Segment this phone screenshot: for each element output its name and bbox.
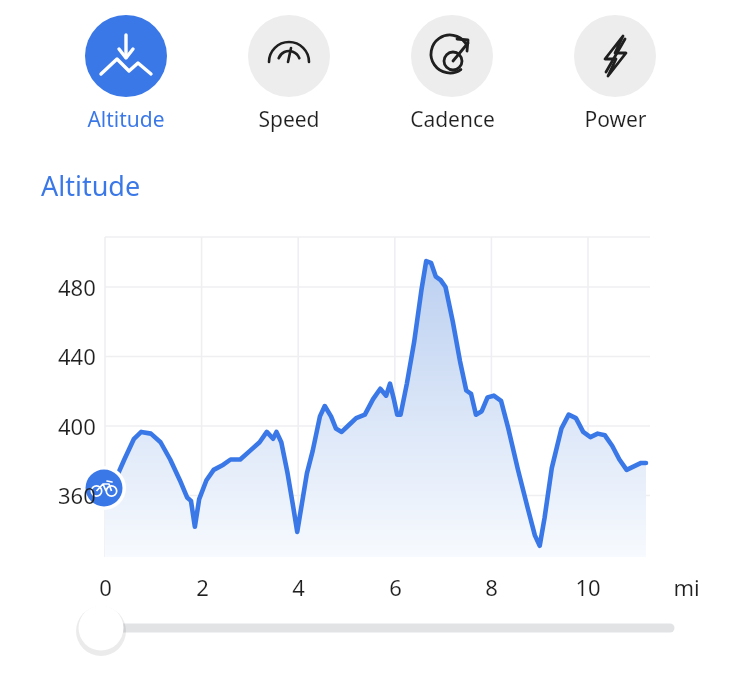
staticText: 4 (292, 572, 305, 602)
button[interactable]: Speed (234, 8, 344, 133)
staticText: 2 (196, 572, 209, 602)
button[interactable]: Cadence (397, 8, 507, 133)
button[interactable]: Altitude (71, 8, 181, 133)
staticText: 480 (58, 272, 96, 302)
button[interactable]: Scrub position (76, 603, 126, 653)
staticText: 10 (575, 572, 601, 602)
staticText: 6 (389, 572, 402, 602)
staticText: 440 (58, 341, 96, 371)
staticText: 360 (58, 480, 96, 510)
staticText: mi (673, 572, 700, 602)
staticText: Power (584, 105, 647, 134)
staticText: 0 (99, 572, 112, 602)
staticText: Cadence (410, 105, 495, 134)
staticText: 8 (485, 572, 498, 602)
staticText: Altitude (41, 167, 141, 204)
staticText: Altitude (87, 105, 165, 134)
button[interactable]: Power (560, 8, 670, 133)
staticText: 400 (58, 411, 96, 441)
staticText: Speed (258, 105, 320, 134)
